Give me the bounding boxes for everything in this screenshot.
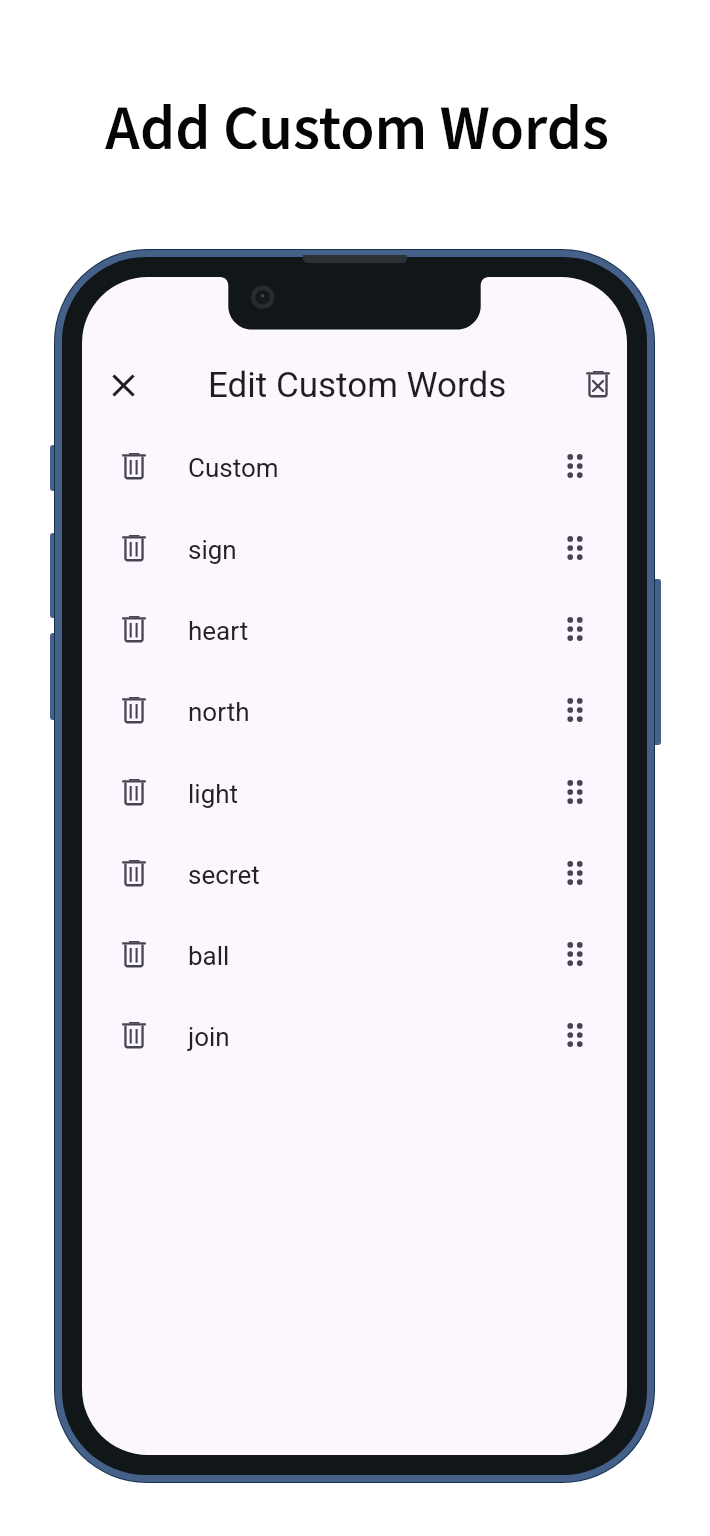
button[interactable]: Delete north bbox=[106, 682, 162, 738]
button[interactable]: Delete secret bbox=[82, 832, 627, 913]
button[interactable]: Delete light bbox=[82, 751, 627, 832]
button[interactable]: Delete sign bbox=[82, 507, 627, 588]
staticText: north bbox=[188, 697, 250, 727]
button[interactable]: Delete join bbox=[82, 994, 627, 1075]
button[interactable]: Reorder heart bbox=[547, 601, 603, 657]
button[interactable]: Reorder ball bbox=[547, 926, 603, 982]
staticText: secret bbox=[188, 860, 260, 890]
button[interactable]: Reorder sign bbox=[547, 520, 603, 576]
staticText: Custom bbox=[188, 453, 279, 483]
staticText: sign bbox=[188, 535, 237, 565]
staticText: ball bbox=[188, 941, 230, 971]
button[interactable]: Delete north bbox=[82, 669, 627, 750]
button[interactable]: Delete secret bbox=[106, 845, 162, 901]
staticText: Add Custom Words bbox=[105, 85, 609, 149]
button[interactable]: Reorder join bbox=[547, 1007, 603, 1063]
button[interactable]: Close bbox=[95, 357, 151, 413]
button[interactable]: Delete ball bbox=[82, 913, 627, 994]
button[interactable]: Delete heart bbox=[106, 601, 162, 657]
button[interactable]: Reorder light bbox=[547, 764, 603, 820]
staticText: join bbox=[188, 1022, 230, 1052]
button[interactable]: Reorder secret bbox=[547, 845, 603, 901]
button[interactable]: Delete heart bbox=[82, 588, 627, 669]
staticText: light bbox=[188, 779, 239, 809]
button[interactable]: Delete all words bbox=[570, 356, 626, 412]
button[interactable]: Reorder north bbox=[547, 682, 603, 738]
button[interactable]: Delete join bbox=[106, 1007, 162, 1063]
button[interactable]: Reorder Custom bbox=[547, 438, 603, 494]
button[interactable]: Delete light bbox=[106, 764, 162, 820]
button[interactable]: Delete sign bbox=[106, 520, 162, 576]
staticText: Edit Custom Words bbox=[208, 365, 507, 406]
staticText: heart bbox=[188, 616, 249, 646]
button[interactable]: Delete ball bbox=[106, 926, 162, 982]
button[interactable]: Delete Custom bbox=[106, 438, 162, 494]
button[interactable]: Delete Custom bbox=[82, 425, 627, 506]
